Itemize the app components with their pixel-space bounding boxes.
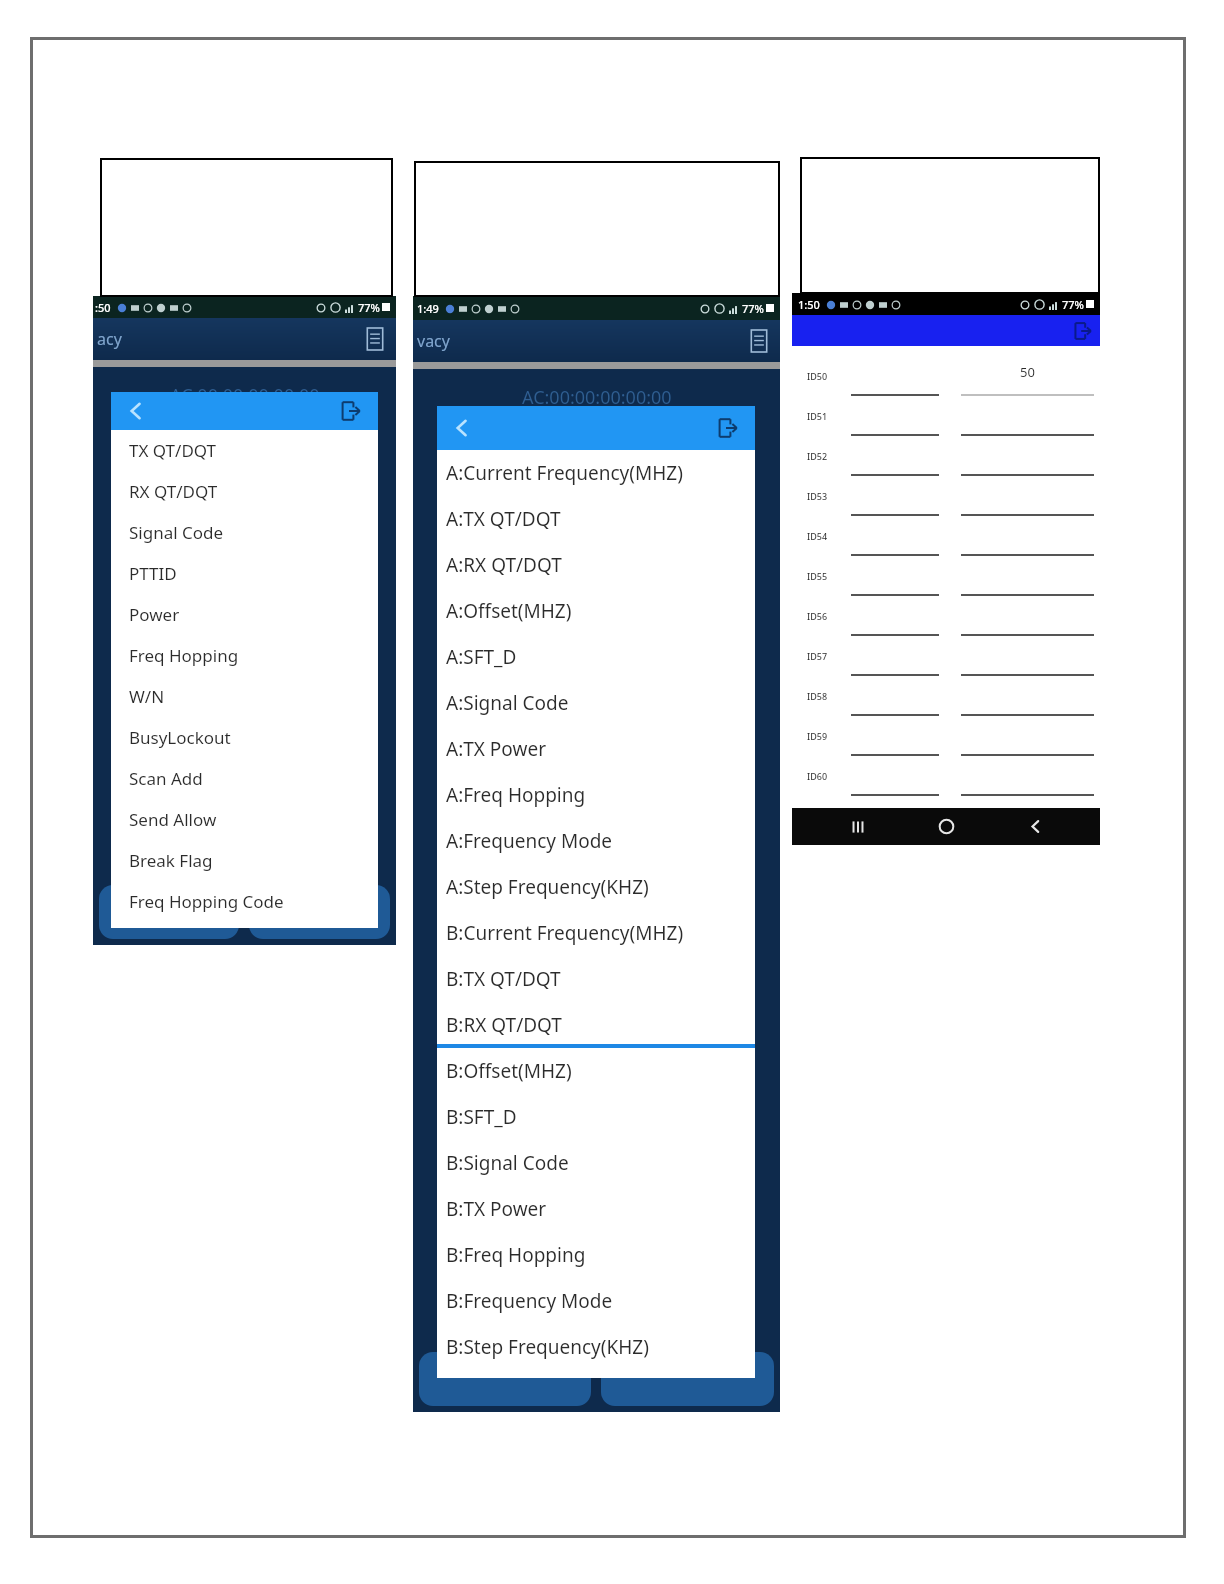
button[interactable]: B:SFT_D — [437, 1094, 755, 1140]
button[interactable]: Scan Add — [111, 758, 378, 799]
button[interactable]: A:Signal Code — [437, 680, 755, 726]
button[interactable]: B:Signal Code — [437, 1140, 755, 1186]
button[interactable]: ID57 — [792, 636, 1100, 676]
staticText: Send Allow — [129, 808, 217, 831]
button[interactable]: A:Freq Hopping — [437, 772, 755, 818]
button[interactable]: ID56 — [792, 596, 1100, 636]
button[interactable] — [419, 1352, 591, 1406]
staticText: B:TX Power — [446, 1196, 547, 1222]
staticText: Signal Code — [129, 521, 224, 544]
staticText: ID59 — [807, 730, 851, 742]
button[interactable]: RX QT/DQT — [111, 471, 378, 512]
staticText: B:SFT_D — [446, 1104, 517, 1130]
staticText: 1:49 — [417, 301, 439, 316]
staticText: ID55 — [807, 570, 851, 582]
button[interactable]: B:Freq Hopping — [437, 1232, 755, 1278]
staticText: B:TX QT/DQT — [446, 966, 561, 992]
staticText: vacy — [417, 330, 450, 352]
staticText: ID56 — [807, 610, 851, 622]
staticText: B:Step Frequency(KHZ) — [446, 1334, 649, 1360]
staticText: A:Offset(MHZ) — [446, 598, 572, 624]
staticText: TX QT/DQT — [129, 439, 217, 462]
staticText: :50 — [95, 300, 111, 315]
button[interactable]: B:TX Power — [437, 1186, 755, 1232]
button[interactable]: A:SFT_D — [437, 634, 755, 680]
staticText: AC:00:00:00:00:00 — [170, 383, 320, 408]
button[interactable]: Freq Hopping — [111, 635, 378, 676]
staticText: ID54 — [807, 530, 851, 542]
staticText: AC:00:00:00:00:00 — [522, 385, 672, 410]
button[interactable]: Exit — [336, 396, 366, 426]
button[interactable]: ID50 — [792, 356, 1100, 396]
button[interactable]: Recents — [835, 808, 881, 845]
button[interactable]: Exit — [1070, 318, 1096, 344]
staticText: ID52 — [807, 450, 851, 462]
button[interactable]: B:Offset(MHZ) — [437, 1048, 755, 1094]
button[interactable]: ID55 — [792, 556, 1100, 596]
staticText: PTTID — [129, 562, 177, 585]
button[interactable]: ID51 — [792, 396, 1100, 436]
button[interactable]: A:Current Frequency(MHZ) — [437, 450, 755, 496]
staticText: A:SFT_D — [446, 644, 517, 670]
staticText: B:Signal Code — [446, 1150, 569, 1176]
button[interactable]: W/N — [111, 676, 378, 717]
button[interactable]: A:TX QT/DQT — [437, 496, 755, 542]
staticText: A:Freq Hopping — [446, 782, 586, 808]
button[interactable]: ID60 — [792, 756, 1100, 796]
staticText: Scan Add — [129, 767, 203, 790]
staticText: B:Current Frequency(MHZ) — [446, 920, 684, 946]
staticText: B:Offset(MHZ) — [446, 1058, 572, 1084]
staticText: W/N — [129, 685, 165, 708]
staticText: A:Signal Code — [446, 690, 569, 716]
button[interactable]: Freq Hopping Code — [111, 881, 378, 922]
staticText: A:RX QT/DQT — [446, 552, 562, 578]
button[interactable]: B:Current Frequency(MHZ) — [437, 910, 755, 956]
button[interactable]: Power — [111, 594, 378, 635]
staticText: 77% — [1062, 297, 1084, 312]
staticText: Power — [129, 603, 180, 626]
staticText: ID60 — [807, 770, 851, 782]
button[interactable] — [601, 1352, 774, 1406]
staticText: 77% — [742, 301, 764, 316]
button[interactable]: A:Offset(MHZ) — [437, 588, 755, 634]
button[interactable]: A:TX Power — [437, 726, 755, 772]
button[interactable]: Send Allow — [111, 799, 378, 840]
button[interactable]: B:Frequency Mode — [437, 1278, 755, 1324]
button[interactable]: Back — [447, 413, 477, 443]
staticText: ID51 — [807, 410, 851, 422]
button[interactable]: Back — [121, 396, 151, 426]
button[interactable]: Break Flag — [111, 840, 378, 881]
staticText: 1:50 — [798, 297, 820, 312]
button[interactable]: ID52 — [792, 436, 1100, 476]
button[interactable]: B:RX QT/DQT — [437, 1002, 755, 1048]
button[interactable]: ID59 — [792, 716, 1100, 756]
button[interactable]: Signal Code — [111, 512, 378, 553]
button[interactable] — [99, 885, 239, 939]
button[interactable]: A:Step Frequency(KHZ) — [437, 864, 755, 910]
button[interactable]: Home — [923, 808, 969, 845]
button[interactable]: B:Step Frequency(KHZ) — [437, 1324, 755, 1370]
staticText: BusyLockout — [129, 726, 231, 749]
button[interactable] — [249, 885, 390, 939]
button[interactable]: B:TX QT/DQT — [437, 956, 755, 1002]
staticText: Freq Hopping — [129, 644, 239, 667]
button[interactable]: Back — [1012, 808, 1058, 845]
staticText: A:Current Frequency(MHZ) — [446, 460, 683, 486]
staticText: Freq Hopping Code — [129, 890, 284, 913]
button[interactable]: PTTID — [111, 553, 378, 594]
staticText: A:Frequency Mode — [446, 828, 613, 854]
button[interactable]: A:RX QT/DQT — [437, 542, 755, 588]
button[interactable]: ID58 — [792, 676, 1100, 716]
staticText: acy — [97, 328, 122, 350]
button[interactable]: ID53 — [792, 476, 1100, 516]
button[interactable]: BusyLockout — [111, 717, 378, 758]
staticText: A:TX Power — [446, 736, 546, 762]
staticText: ID57 — [807, 650, 851, 662]
button[interactable]: ID54 — [792, 516, 1100, 556]
staticText: 50 — [1020, 363, 1035, 381]
button[interactable]: A:Frequency Mode — [437, 818, 755, 864]
staticText: Break Flag — [129, 849, 213, 872]
button[interactable]: TX QT/DQT — [111, 430, 378, 471]
staticText: A:Step Frequency(KHZ) — [446, 874, 649, 900]
button[interactable]: Exit — [713, 413, 743, 443]
